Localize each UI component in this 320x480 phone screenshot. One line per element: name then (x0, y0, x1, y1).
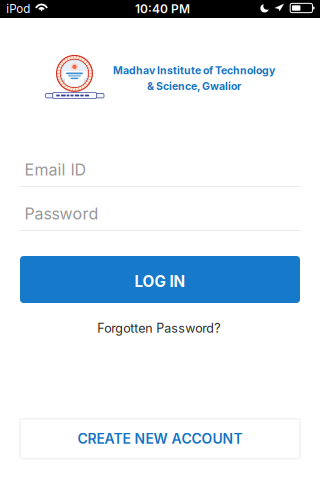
staticText: CREATE NEW ACCOUNT (77, 430, 242, 447)
button[interactable]: Forgotten Password? (74, 316, 244, 340)
button[interactable]: Password (20, 194, 300, 231)
staticText: Madhav Institute of Technology (113, 64, 275, 77)
staticText: Password (25, 204, 99, 223)
staticText: & Science, Gwalior (147, 80, 241, 93)
staticText: 10:40 PM (135, 2, 190, 16)
staticText: iPod (6, 2, 30, 16)
button[interactable]: CREATE NEW ACCOUNT (20, 419, 300, 459)
staticText: LOG IN (134, 272, 185, 291)
staticText: Forgotten Password? (97, 321, 220, 336)
button[interactable]: LOG IN (20, 256, 300, 303)
button[interactable]: Email ID (20, 150, 300, 187)
staticText: Email ID (25, 160, 87, 179)
